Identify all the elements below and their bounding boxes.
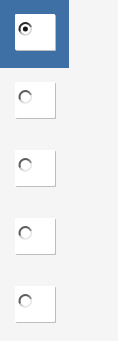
button[interactable]: Option 5 xyxy=(0,272,69,340)
button[interactable]: Option 3 xyxy=(0,136,69,204)
button[interactable]: Option 2 xyxy=(0,68,69,136)
button[interactable]: Option 4 xyxy=(0,204,69,272)
button[interactable]: Option 1 xyxy=(0,0,69,68)
